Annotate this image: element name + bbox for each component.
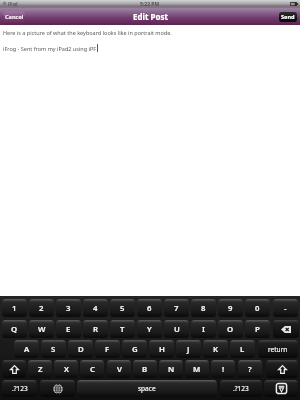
button[interactable]: .?123 [2, 380, 37, 397]
button[interactable]: K [203, 340, 228, 358]
staticText: V [117, 364, 122, 375]
button[interactable]: ? [238, 360, 262, 378]
button[interactable]: D [68, 340, 93, 358]
button[interactable]: - [273, 299, 298, 317]
button[interactable]: 2 [29, 299, 54, 317]
staticText: X [64, 364, 69, 375]
staticText: S [51, 344, 56, 355]
button[interactable]: return [258, 340, 298, 358]
staticText: W [38, 324, 46, 335]
button[interactable]: Y [137, 320, 162, 338]
button[interactable]: X [54, 360, 78, 378]
button[interactable]: Shift [266, 360, 298, 378]
button[interactable]: ! [211, 360, 235, 378]
staticText: Here is a picture of what the keyboard l… [3, 29, 172, 36]
staticText: L [240, 344, 245, 355]
button[interactable]: 5 [110, 299, 135, 317]
button[interactable]: B [133, 360, 157, 378]
button[interactable]: L [230, 340, 255, 358]
staticText: 0 [255, 303, 260, 314]
staticText: G [132, 344, 138, 355]
staticText: 8 [201, 303, 206, 314]
button[interactable]: A [14, 340, 39, 358]
staticText: 5:22 PM [140, 1, 160, 8]
staticText: 9 [228, 303, 233, 314]
button[interactable]: Change keyboard [40, 380, 75, 397]
staticText: .?123 [12, 384, 28, 393]
staticText: Send [281, 13, 295, 21]
button[interactable]: P [245, 320, 270, 338]
button[interactable]: I [191, 320, 216, 338]
button[interactable]: 7 [164, 299, 189, 317]
staticText: B [142, 364, 148, 375]
staticText: F [105, 344, 110, 355]
button[interactable]: H [149, 340, 174, 358]
staticText: H [159, 344, 165, 355]
staticText: E [66, 324, 71, 335]
staticText: Z [38, 364, 43, 375]
button[interactable]: Shift [2, 360, 26, 378]
staticText: T [120, 324, 125, 335]
staticText: - [284, 303, 287, 314]
staticText: A [24, 344, 30, 355]
button[interactable]: M [185, 360, 209, 378]
button[interactable]: Send [279, 12, 297, 22]
button[interactable]: W [29, 320, 54, 338]
staticText: O [227, 324, 234, 335]
button[interactable]: T [110, 320, 135, 338]
button[interactable]: V [107, 360, 131, 378]
staticText: U [174, 324, 180, 335]
staticText: 6 [147, 303, 152, 314]
staticText: N [168, 364, 175, 375]
staticText: J [187, 344, 190, 355]
staticText: space [138, 384, 156, 393]
button[interactable]: C [80, 360, 104, 378]
staticText: Edit Post [133, 11, 168, 22]
button[interactable]: G [122, 340, 147, 358]
button[interactable]: 1 [2, 299, 27, 317]
staticText: 4 [93, 303, 98, 314]
staticText: D [78, 344, 84, 355]
button[interactable]: Backspace [273, 320, 299, 338]
button[interactable]: U [164, 320, 189, 338]
staticText: ? [248, 364, 252, 375]
button[interactable]: 3 [56, 299, 81, 317]
button[interactable]: Cancel [3, 11, 25, 22]
staticText: iFrog - Sent from my iPad2 using iPF [3, 45, 97, 52]
staticText: Q [11, 324, 18, 335]
button[interactable]: O [218, 320, 243, 338]
button[interactable]: R [83, 320, 108, 338]
button[interactable]: Q [2, 320, 27, 338]
button[interactable]: J [176, 340, 201, 358]
staticText: 1 [12, 303, 17, 314]
staticText: K [213, 344, 219, 355]
staticText: Y [147, 324, 152, 335]
button[interactable]: Z [28, 360, 52, 378]
button[interactable]: 8 [191, 299, 216, 317]
staticText: Cancel [5, 13, 24, 21]
button[interactable]: F [95, 340, 120, 358]
button[interactable]: E [56, 320, 81, 338]
button[interactable]: Hide keyboard [264, 380, 298, 397]
staticText: 3 [66, 303, 71, 314]
button[interactable]: 9 [218, 299, 243, 317]
staticText: I [202, 324, 205, 335]
staticText: 5 [120, 303, 125, 314]
staticText: ! [222, 364, 225, 375]
staticText: iPad [8, 1, 18, 7]
button[interactable]: 0 [245, 299, 270, 317]
staticText: .?123 [233, 384, 249, 393]
button[interactable]: S [41, 340, 66, 358]
staticText: 7 [174, 303, 179, 314]
staticText: R [93, 324, 99, 335]
staticText: P [255, 324, 260, 335]
staticText: return [268, 345, 288, 354]
staticText: 2 [39, 303, 44, 314]
button[interactable]: 6 [137, 299, 162, 317]
staticText: C [90, 364, 95, 375]
button[interactable]: 4 [83, 299, 108, 317]
button[interactable]: space [77, 380, 217, 397]
button[interactable]: N [159, 360, 183, 378]
staticText: M [193, 364, 201, 375]
button[interactable]: .?123 [220, 380, 262, 397]
